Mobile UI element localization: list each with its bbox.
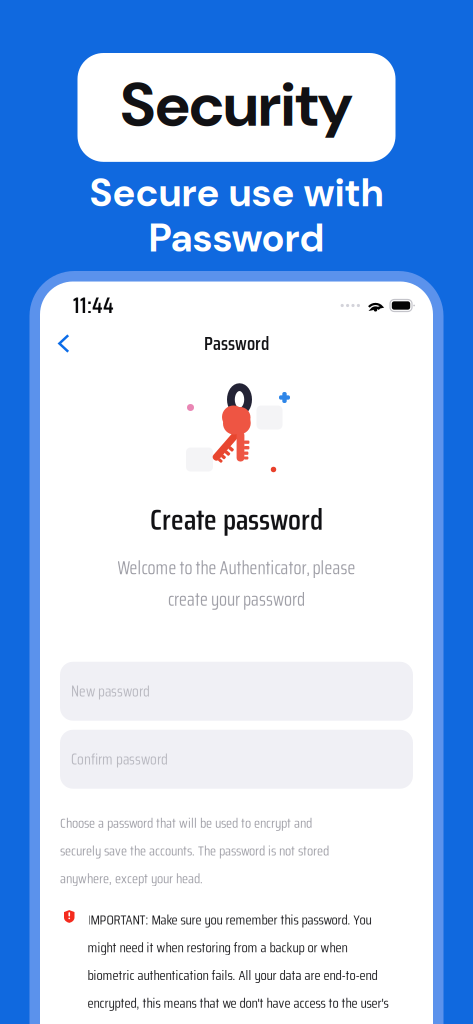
staticText: New password (71, 679, 150, 703)
staticText: encrypted, this means that we don't have… (87, 992, 388, 1014)
staticText: might need it when restoring from a back… (87, 936, 347, 958)
staticText: IMPORTANT: Make sure you remember this p… (87, 908, 371, 931)
staticText: Password (148, 213, 324, 263)
staticText: Welcome to the Authenticator, please (117, 554, 355, 582)
staticText: Security (120, 65, 352, 145)
staticText: Password (204, 329, 269, 358)
button[interactable]: Back (50, 325, 78, 362)
button[interactable]: Confirm password (60, 730, 413, 789)
staticText: Secure use with (89, 168, 383, 218)
staticText: Confirm password (71, 747, 168, 771)
staticText: Create password (150, 496, 323, 543)
staticText: Choose a password that will be used to e… (60, 812, 312, 834)
staticText: create your password (168, 585, 305, 614)
staticText: biometric authentication fails. All your… (87, 964, 377, 986)
staticText: securely save the accounts. The password… (60, 839, 329, 862)
staticText: anywhere, except your head. (60, 867, 203, 889)
staticText: 11:44 (73, 288, 114, 323)
button[interactable]: New password (60, 662, 413, 721)
